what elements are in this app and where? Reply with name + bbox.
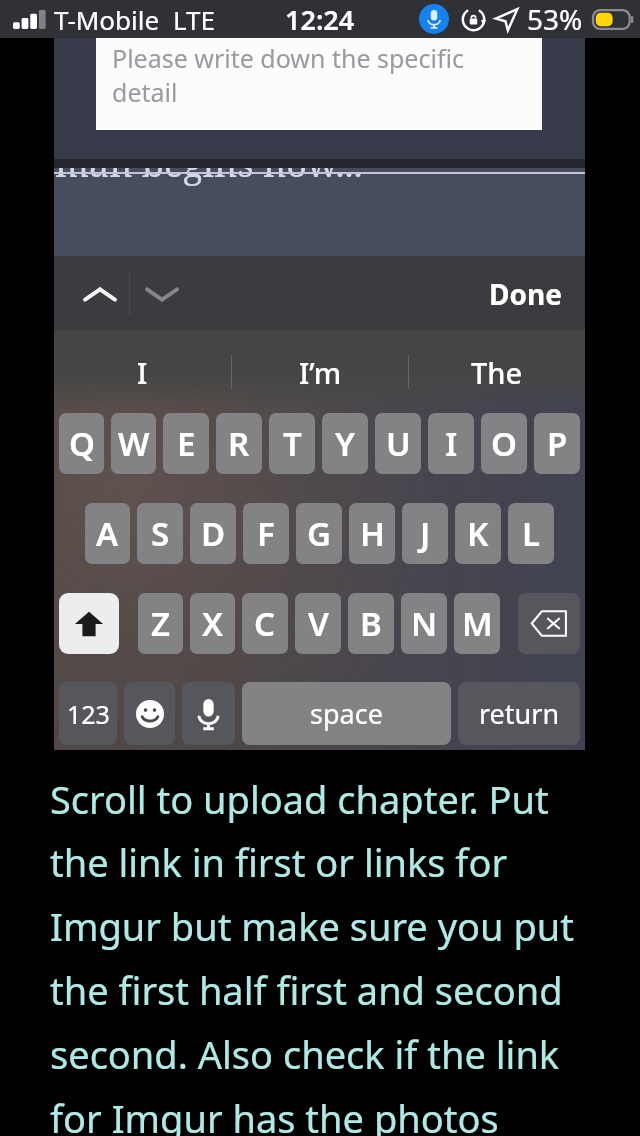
staticText: K: [467, 511, 489, 556]
staticText: I’m: [299, 353, 342, 392]
button[interactable]: K: [455, 503, 501, 564]
button[interactable]: Z: [138, 593, 183, 654]
button[interactable]: 123: [59, 682, 117, 745]
staticText: 123: [67, 697, 110, 731]
staticText: man begins now...: [55, 168, 363, 188]
staticText: U: [386, 421, 411, 466]
staticText: Q: [69, 421, 95, 466]
staticText: S: [151, 511, 170, 556]
staticText: X: [202, 601, 224, 646]
button[interactable]: L: [508, 503, 554, 564]
button[interactable]: Emoji: [124, 682, 175, 745]
button[interactable]: I: [428, 413, 474, 474]
staticText: P: [547, 421, 568, 466]
button[interactable]: Please write down the specific detail: [96, 38, 542, 130]
button[interactable]: A: [85, 503, 130, 564]
staticText: V: [308, 601, 329, 646]
button[interactable]: Backspace: [518, 593, 580, 654]
button[interactable]: P: [534, 413, 580, 474]
button[interactable]: return: [458, 682, 580, 745]
staticText: J: [420, 511, 431, 556]
button[interactable]: The: [409, 331, 585, 413]
staticText: O: [491, 421, 517, 466]
button[interactable]: O: [481, 413, 527, 474]
button[interactable]: X: [190, 593, 235, 654]
staticText: 53%: [527, 0, 583, 38]
button[interactable]: Dictation: [182, 682, 235, 745]
button[interactable]: Previous field: [71, 266, 129, 322]
staticText: A: [96, 511, 119, 556]
button[interactable]: B: [348, 593, 394, 654]
staticText: G: [307, 511, 331, 556]
button[interactable]: I’m: [232, 331, 408, 413]
button[interactable]: J: [402, 503, 448, 564]
button[interactable]: R: [216, 413, 262, 474]
staticText: Z: [151, 601, 171, 646]
button[interactable]: C: [242, 593, 288, 654]
staticText: LTE: [173, 2, 216, 37]
button[interactable]: H: [349, 503, 395, 564]
staticText: Please write down the specific detail: [112, 41, 464, 110]
staticText: E: [177, 421, 196, 466]
staticText: R: [228, 421, 250, 466]
button[interactable]: W: [111, 413, 156, 474]
other: Microphone in use: [419, 4, 449, 34]
staticText: The: [471, 353, 523, 392]
staticText: B: [360, 601, 382, 646]
staticText: D: [201, 511, 226, 556]
button[interactable]: U: [375, 413, 421, 474]
button[interactable]: D: [190, 503, 236, 564]
button[interactable]: M: [454, 593, 500, 654]
button[interactable]: N: [401, 593, 447, 654]
button[interactable]: S: [137, 503, 183, 564]
button[interactable]: G: [296, 503, 342, 564]
button[interactable]: Done: [480, 267, 571, 321]
button[interactable]: T: [269, 413, 315, 474]
staticText: L: [522, 511, 541, 556]
button[interactable]: E: [163, 413, 209, 474]
staticText: M: [462, 601, 493, 646]
staticText: Y: [335, 421, 355, 466]
staticText: N: [411, 601, 438, 646]
staticText: H: [360, 511, 385, 556]
button[interactable]: I: [54, 331, 231, 413]
button[interactable]: Next field: [130, 266, 193, 322]
button[interactable]: space: [242, 682, 451, 745]
button[interactable]: F: [243, 503, 289, 564]
button[interactable]: Shift: [59, 593, 119, 654]
staticText: Done: [489, 275, 562, 313]
staticText: I: [445, 421, 458, 466]
button[interactable]: V: [295, 593, 341, 654]
staticText: return: [479, 695, 560, 732]
staticText: I: [137, 353, 148, 392]
staticText: 12:24: [285, 1, 355, 38]
staticText: Scroll to upload chapter. Put the link i…: [50, 773, 590, 1136]
button[interactable]: Q: [59, 413, 104, 474]
button[interactable]: Y: [322, 413, 368, 474]
staticText: F: [257, 511, 275, 556]
staticText: T: [283, 421, 302, 466]
staticText: C: [254, 601, 276, 646]
staticText: W: [118, 421, 150, 466]
staticText: space: [310, 695, 383, 732]
staticText: T-Mobile: [54, 2, 160, 37]
